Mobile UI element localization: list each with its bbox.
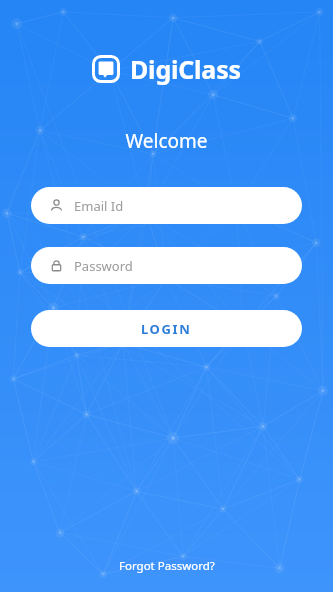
staticText: LOGIN (141, 320, 192, 338)
staticText: Email Id (74, 197, 124, 215)
staticText: Forgot Password? (119, 558, 215, 574)
staticText: Welcome (125, 128, 208, 154)
button[interactable]: Forgot Password? (109, 552, 225, 580)
button[interactable]: Email address (31, 187, 302, 224)
button[interactable]: Password (31, 247, 302, 284)
button[interactable]: LOGIN (31, 310, 302, 347)
other: Password (49, 258, 64, 273)
staticText: DigiClass (130, 52, 241, 86)
staticText: Password (74, 257, 133, 275)
other: Email address (49, 198, 64, 213)
